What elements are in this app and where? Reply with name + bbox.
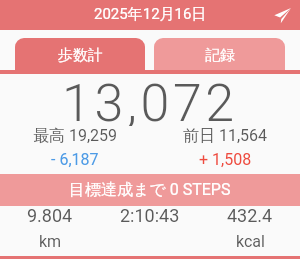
button[interactable]: 記録 bbox=[154, 38, 285, 74]
staticText: km bbox=[39, 232, 62, 251]
staticText: 9.804 bbox=[27, 205, 73, 226]
staticText: 目標達成まで 0 STEPS bbox=[69, 180, 231, 200]
button[interactable]: 目標達成まで 0 STEPS bbox=[0, 174, 300, 206]
staticText: 2:10:43 bbox=[120, 205, 180, 226]
staticText: 前日 11,564 bbox=[183, 126, 268, 146]
staticText: 最高 19,259 bbox=[33, 126, 118, 146]
staticText: + 1,508 bbox=[199, 150, 252, 169]
staticText: - 6,187 bbox=[51, 150, 99, 169]
staticText: 記録 bbox=[205, 46, 235, 65]
staticText: 432.4 bbox=[227, 205, 273, 226]
staticText: 13,072 bbox=[62, 73, 238, 126]
button[interactable]: Send bbox=[270, 3, 294, 27]
staticText: 2025年12月16日 bbox=[94, 5, 207, 24]
button[interactable]: 歩数計 bbox=[15, 38, 145, 74]
staticText: 歩数計 bbox=[58, 46, 103, 65]
staticText: kcal bbox=[236, 232, 265, 251]
